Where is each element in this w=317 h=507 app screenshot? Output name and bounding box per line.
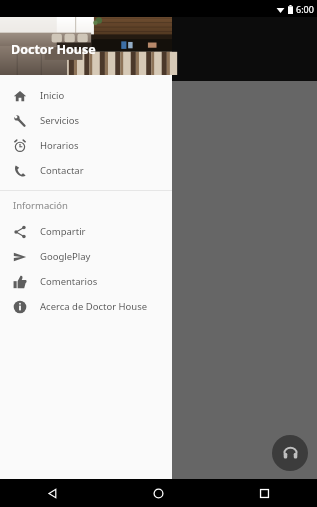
- staticText: Doctor House: [11, 41, 96, 58]
- staticText: Horarios: [40, 139, 79, 152]
- staticText: GooglePlay: [40, 250, 91, 263]
- button[interactable]: Comentarios: [0, 269, 172, 294]
- staticText: Información: [13, 199, 68, 212]
- button[interactable]: Contact support: [272, 435, 308, 471]
- button[interactable]: GooglePlay: [0, 244, 172, 269]
- button[interactable]: Recent apps: [211, 479, 317, 507]
- staticText: Compartir: [40, 225, 86, 238]
- button[interactable]: Compartir: [0, 219, 172, 244]
- staticText: Contactar: [40, 164, 84, 177]
- button[interactable]: Acerca de Doctor House: [0, 294, 172, 319]
- button[interactable]: Inicio: [0, 83, 172, 108]
- button[interactable]: Back: [0, 479, 105, 507]
- staticText: Servicios: [40, 114, 80, 127]
- button[interactable]: Contactar: [0, 158, 172, 183]
- button[interactable]: Horarios: [0, 133, 172, 158]
- button[interactable]: Servicios: [0, 108, 172, 133]
- staticText: Inicio: [40, 89, 65, 102]
- button[interactable]: Home: [105, 479, 211, 507]
- staticText: Acerca de Doctor House: [40, 300, 148, 313]
- staticText: Comentarios: [40, 275, 98, 288]
- staticText: 6:00: [296, 3, 314, 15]
